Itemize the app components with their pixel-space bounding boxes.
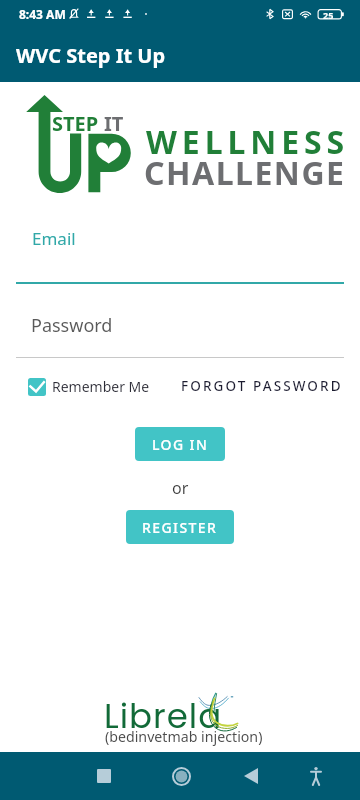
button[interactable]: Home — [150, 752, 212, 800]
staticText: FORGOT PASSWORD — [181, 377, 343, 395]
button[interactable]: LOG IN — [135, 427, 225, 461]
staticText: Librela — [104, 692, 223, 740]
button[interactable]: FORGOT PASSWORD — [177, 373, 347, 399]
staticText: LOG IN — [152, 435, 209, 454]
staticText: WELLNESS — [146, 120, 350, 164]
staticText: Remember Me — [52, 377, 150, 396]
staticText: CHALLENGE — [144, 151, 346, 195]
button[interactable]: Accessibility — [285, 752, 347, 800]
staticText: 8:43 AM — [19, 6, 66, 22]
button[interactable]: REGISTER — [126, 510, 234, 544]
staticText: or — [172, 477, 189, 499]
staticText: (bedinvetmab injection) — [105, 727, 263, 746]
button[interactable]: Back — [220, 752, 282, 800]
button[interactable]: Recent apps — [62, 752, 150, 800]
staticText: Password — [31, 313, 113, 338]
staticText: 25 — [323, 9, 334, 21]
staticText: REGISTER — [142, 518, 218, 537]
staticText: IT — [104, 110, 124, 137]
staticText: Email — [32, 227, 76, 250]
staticText: STEP — [52, 110, 99, 137]
staticText: WVC Step It Up — [16, 42, 166, 69]
button[interactable]: Remember Me — [24, 373, 154, 400]
